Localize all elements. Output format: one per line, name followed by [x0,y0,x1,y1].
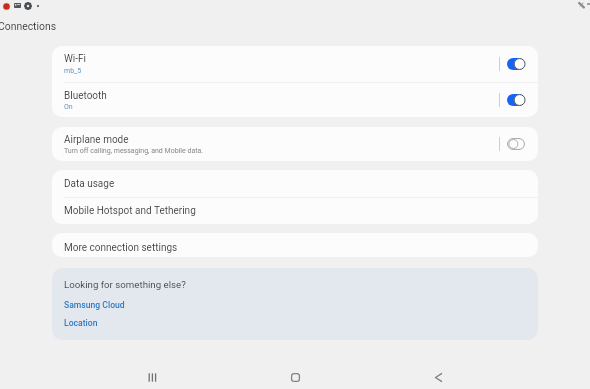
button[interactable]: Toggle Wi-Fi [499,51,525,77]
button[interactable]: Back [416,365,460,389]
staticText: Connections [0,20,57,32]
staticText: Mobile Hotspot and Tethering [64,205,196,217]
staticText: Data usage [64,178,115,190]
button[interactable]: Data usage [52,170,538,197]
staticText: mb_5 [64,67,82,75]
staticText: Turn off calling, messaging, and Mobile … [64,147,204,155]
staticText: Airplane mode [64,134,129,146]
button[interactable]: Location [52,314,538,332]
button[interactable]: Recents [130,365,174,389]
button[interactable]: Toggle Bluetooth [499,87,525,113]
button[interactable]: Wi-Fi [52,46,538,82]
staticText: Location [64,318,98,328]
staticText: Bluetooth [64,90,107,102]
button[interactable]: Bluetooth [52,83,538,117]
button[interactable]: Samsung Cloud [52,296,538,314]
button[interactable]: More connection settings [52,233,538,257]
staticText: Samsung Cloud [64,300,125,310]
button[interactable]: Airplane mode [52,127,538,161]
staticText: Looking for something else? [64,279,186,290]
button[interactable]: Mobile Hotspot and Tethering [52,198,538,224]
staticText: Wi-Fi [64,53,87,65]
button[interactable]: Home [273,365,317,389]
staticText: On [64,103,73,111]
staticText: More connection settings [64,242,178,254]
button[interactable]: Toggle Airplane mode [499,131,525,157]
